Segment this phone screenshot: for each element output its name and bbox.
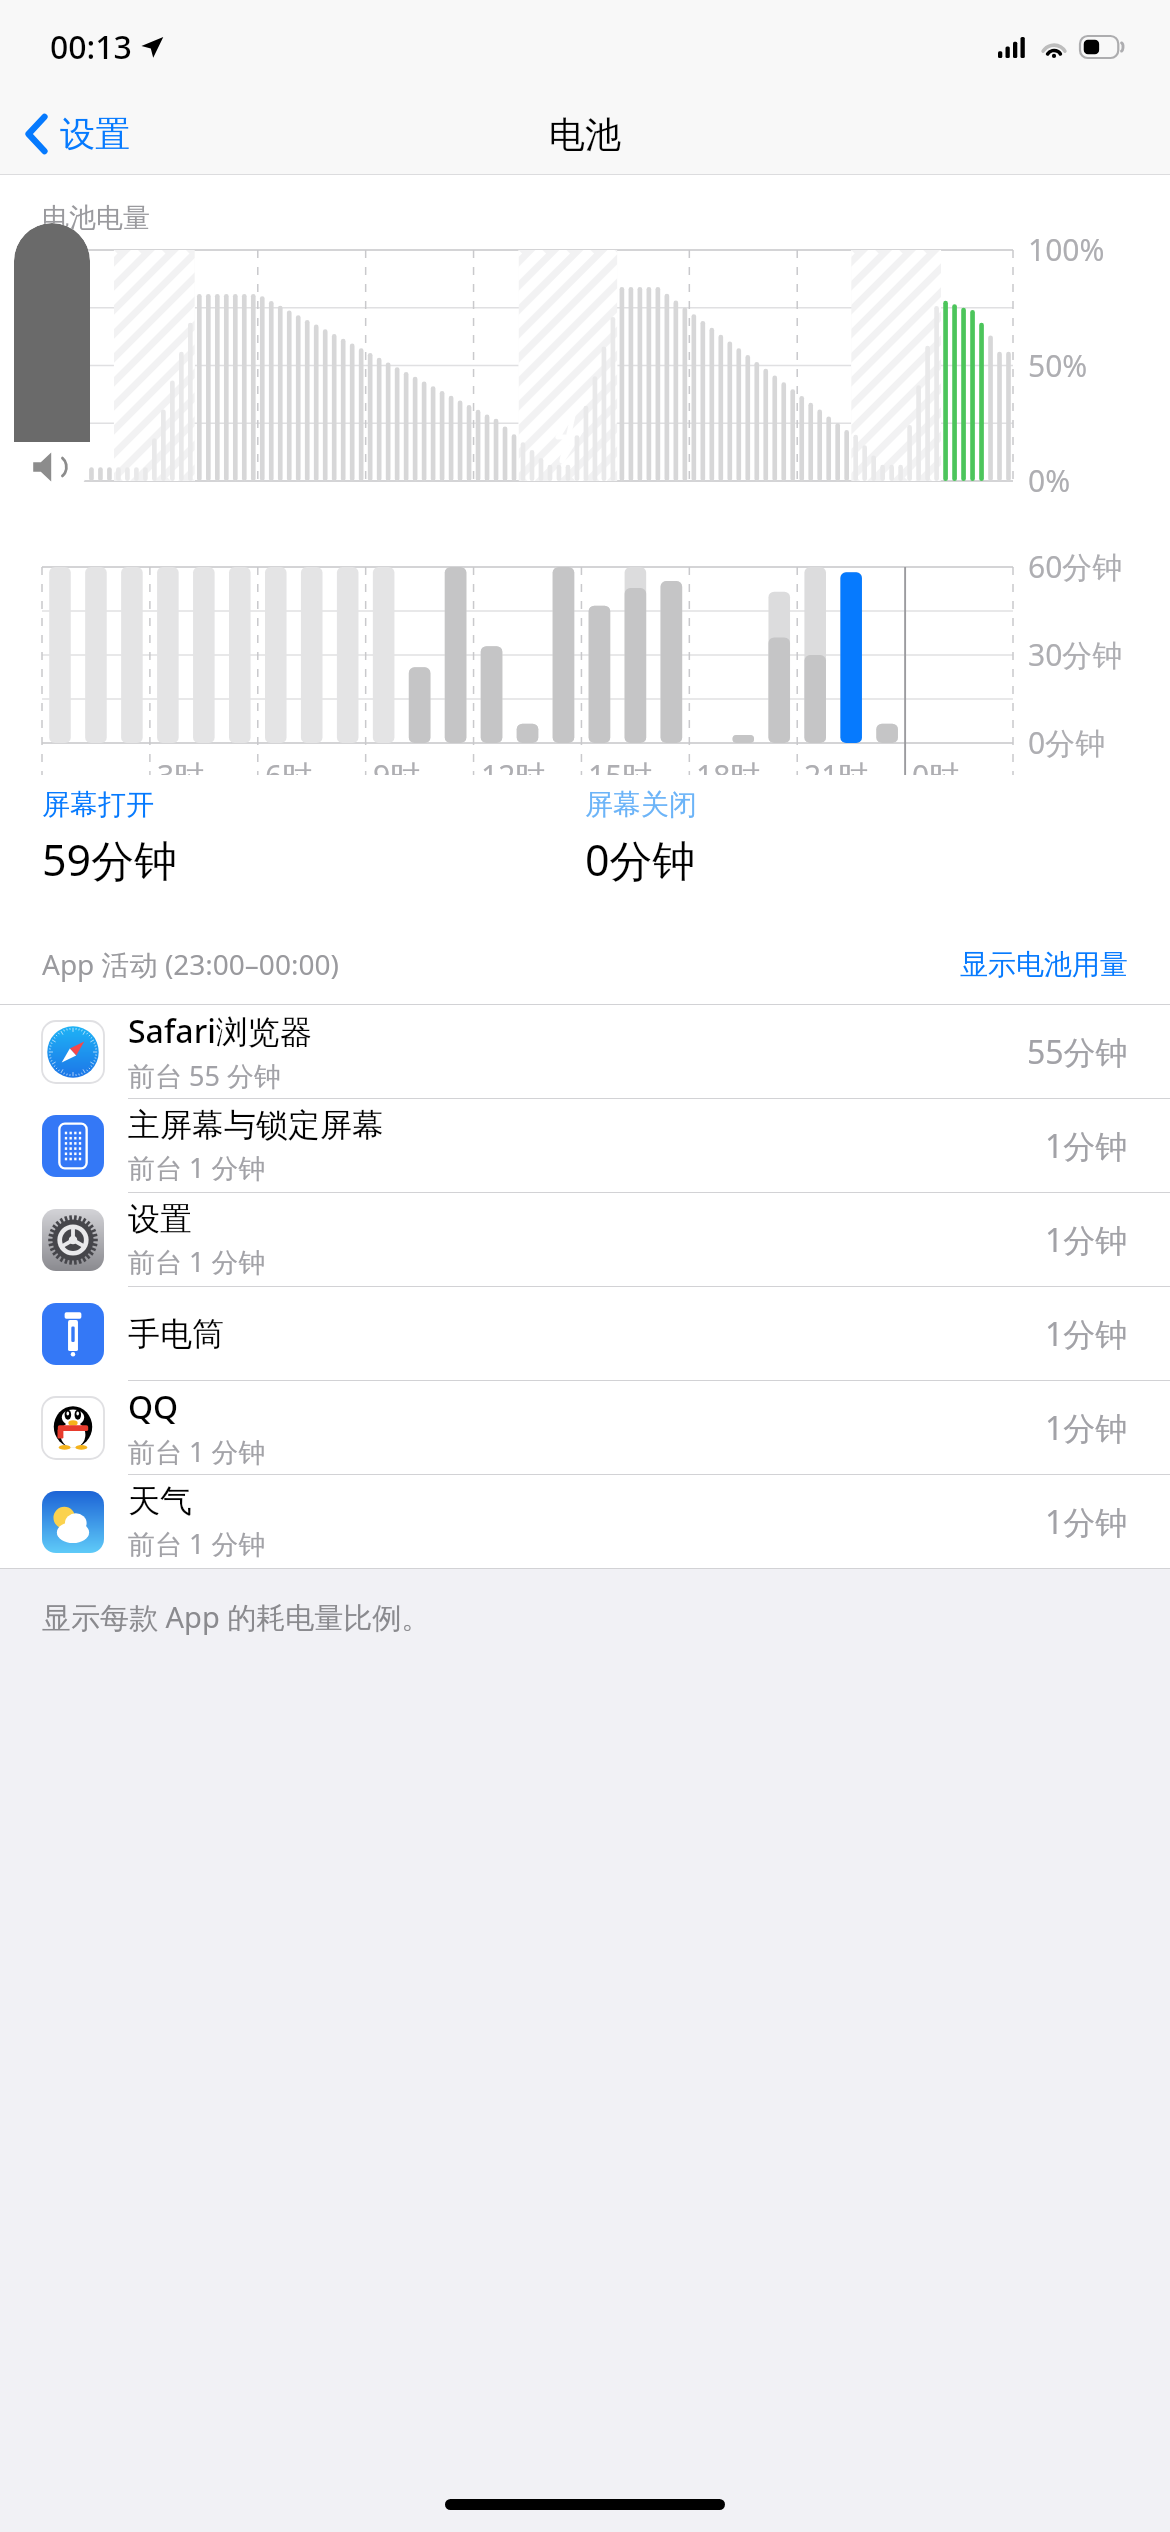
staticText: 显示每款 App 的耗电量比例。 — [42, 1597, 431, 1637]
staticText: 屏幕关闭 — [585, 787, 697, 822]
staticText: 30分钟 — [1028, 634, 1123, 675]
staticText: 电池 — [549, 112, 621, 157]
staticText: 0% — [1028, 460, 1071, 501]
staticText: 前台 1 分钟 — [128, 1243, 266, 1280]
staticText: 1分钟 — [1045, 1500, 1128, 1544]
staticText: 12时 — [481, 755, 546, 796]
staticText: 15时 — [588, 755, 653, 796]
staticText: App 活动 (23:00–00:00) — [42, 945, 339, 983]
staticText: 59分钟 — [42, 830, 178, 889]
staticText: 21时 — [804, 755, 869, 796]
staticText: 1分钟 — [1045, 1218, 1128, 1262]
button[interactable]: QQ — [0, 1381, 1170, 1475]
staticText: 前台 1 分钟 — [128, 1149, 266, 1186]
button[interactable]: 设置 — [0, 1193, 1170, 1287]
staticText: 前台 1 分钟 — [128, 1525, 266, 1562]
staticText: 1分钟 — [1045, 1406, 1128, 1450]
button[interactable]: 显示电池用量 — [918, 937, 1170, 992]
staticText: 0分钟 — [1028, 722, 1106, 763]
staticText: 屏幕打开 — [42, 787, 154, 822]
staticText: 设置 — [128, 1199, 192, 1239]
button[interactable]: 主屏幕与锁定屏幕 — [0, 1099, 1170, 1193]
button[interactable]: 天气 — [0, 1475, 1170, 1568]
staticText: 3时 — [157, 755, 205, 796]
staticText: 1分钟 — [1045, 1124, 1128, 1168]
staticText: 显示电池用量 — [960, 947, 1128, 982]
staticText: Safari浏览器 — [128, 1009, 312, 1053]
staticText: 前台 55 分钟 — [128, 1057, 281, 1094]
staticText: 主屏幕与锁定屏幕 — [128, 1105, 384, 1145]
other: Volume — [14, 223, 90, 499]
staticText: 100% — [1028, 229, 1105, 270]
staticText: 00:13 — [50, 25, 132, 69]
button[interactable]: Safari浏览器 — [0, 1005, 1170, 1099]
staticText: 设置 — [60, 112, 130, 156]
staticText: 18时 — [696, 755, 761, 796]
staticText: 6时 — [265, 755, 313, 796]
staticText: 前台 1 分钟 — [128, 1433, 266, 1470]
button[interactable]: 设置 — [0, 102, 148, 166]
staticText: 8月2日 — [49, 805, 144, 846]
staticText: 0时 — [912, 755, 960, 796]
staticText: 手电筒 — [128, 1314, 224, 1354]
staticText: 9时 — [373, 755, 421, 796]
staticText: 0分钟 — [585, 830, 696, 889]
staticText: 天气 — [128, 1481, 192, 1521]
button[interactable]: 手电筒 — [0, 1287, 1170, 1381]
staticText: 50% — [1028, 345, 1088, 386]
staticText: 电池电量 — [42, 201, 150, 235]
staticText: 1分钟 — [1045, 1312, 1128, 1356]
staticText: 55分钟 — [1027, 1030, 1128, 1074]
staticText: QQ — [128, 1385, 179, 1429]
staticText: 60分钟 — [1028, 546, 1123, 587]
